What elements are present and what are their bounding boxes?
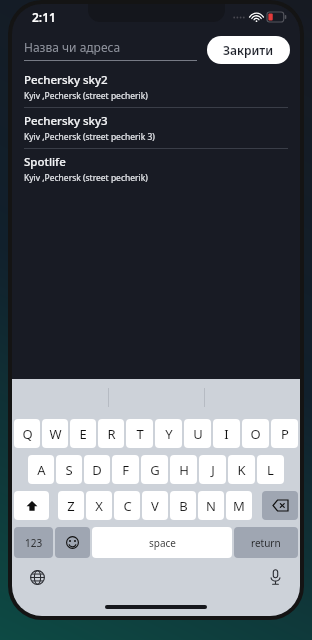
- button[interactable]: Q: [14, 419, 40, 448]
- button[interactable]: space: [92, 527, 232, 558]
- staticText: Pechersky sky3: [24, 113, 108, 129]
- button[interactable]: Z: [58, 491, 84, 520]
- staticText: 2:11: [32, 9, 56, 25]
- staticText: Q: [22, 425, 33, 443]
- staticText: N: [206, 497, 216, 515]
- staticText: T: [136, 425, 144, 443]
- staticText: Pechersky sky2: [24, 72, 108, 88]
- staticText: J: [211, 461, 215, 479]
- staticText: F: [122, 461, 129, 479]
- staticText: H: [179, 461, 189, 479]
- staticText: C: [123, 497, 132, 515]
- button[interactable]: L: [257, 455, 284, 484]
- button[interactable]: J: [199, 455, 226, 484]
- staticText: return: [251, 536, 281, 550]
- staticText: M: [233, 497, 245, 515]
- staticText: Y: [165, 425, 173, 443]
- button[interactable]: Pechersky sky3: [12, 108, 300, 149]
- button[interactable]: I: [213, 419, 240, 448]
- button[interactable]: O: [242, 419, 269, 448]
- staticText: A: [37, 461, 46, 479]
- staticText: Kyiv ,Pechersk (street pecherik 3): [24, 131, 155, 143]
- staticText: G: [150, 461, 160, 479]
- button[interactable]: Закрити: [207, 36, 290, 64]
- button[interactable]: B: [170, 491, 196, 520]
- button[interactable]: Dictation: [262, 564, 288, 590]
- staticText: V: [151, 497, 159, 515]
- button[interactable]: U: [184, 419, 211, 448]
- button[interactable]: Change keyboard: [24, 564, 50, 590]
- button[interactable]: P: [271, 419, 298, 448]
- button[interactable]: W: [42, 419, 68, 448]
- button[interactable]: M: [226, 491, 252, 520]
- staticText: Назва чи адреса: [24, 39, 121, 55]
- button[interactable]: Pechersky sky2: [12, 67, 300, 108]
- button[interactable]: N: [198, 491, 224, 520]
- button[interactable]: S: [56, 455, 82, 484]
- staticText: 123: [25, 536, 43, 550]
- staticText: D: [92, 461, 102, 479]
- button[interactable]: Spotlife: [12, 149, 300, 189]
- button[interactable]: Shift: [14, 491, 49, 520]
- button[interactable]: F: [112, 455, 139, 484]
- button[interactable]: Y: [155, 419, 182, 448]
- button[interactable]: H: [170, 455, 197, 484]
- staticText: Kyiv ,Pechersk (street pecherik): [24, 90, 148, 102]
- staticText: Kyiv ,Pechersk (street pecherik): [24, 172, 148, 184]
- staticText: U: [193, 425, 203, 443]
- button[interactable]: return: [234, 527, 298, 558]
- staticText: S: [65, 461, 73, 479]
- staticText: Закрити: [223, 42, 274, 58]
- button[interactable]: K: [228, 455, 255, 484]
- staticText: R: [107, 425, 116, 443]
- button[interactable]: Emoji: [55, 527, 90, 558]
- button[interactable]: 123: [14, 527, 53, 558]
- staticText: X: [95, 497, 103, 515]
- staticText: W: [49, 425, 62, 443]
- staticText: E: [79, 425, 87, 443]
- button[interactable]: X: [86, 491, 112, 520]
- button[interactable]: G: [141, 455, 168, 484]
- button[interactable]: Назва чи адреса: [24, 39, 207, 61]
- button[interactable]: V: [142, 491, 168, 520]
- staticText: Spotlife: [24, 154, 66, 170]
- staticText: O: [250, 425, 261, 443]
- button[interactable]: R: [98, 419, 124, 448]
- staticText: I: [224, 425, 229, 443]
- staticText: P: [281, 425, 289, 443]
- button[interactable]: Backspace: [262, 491, 298, 520]
- button[interactable]: E: [70, 419, 96, 448]
- button[interactable]: C: [114, 491, 140, 520]
- button[interactable]: D: [84, 455, 110, 484]
- button[interactable]: A: [28, 455, 54, 484]
- button[interactable]: T: [126, 419, 153, 448]
- staticText: Z: [67, 497, 75, 515]
- staticText: L: [267, 461, 274, 479]
- staticText: K: [237, 461, 246, 479]
- staticText: space: [149, 536, 176, 550]
- staticText: B: [179, 497, 188, 515]
